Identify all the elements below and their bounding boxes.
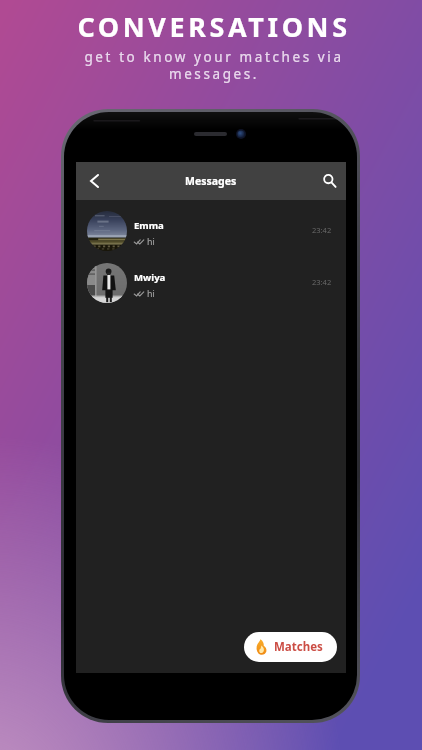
staticText: Messages: [185, 174, 237, 188]
button[interactable]: Back: [81, 168, 107, 194]
staticText: Emma: [134, 219, 164, 232]
button[interactable]: Matches: [244, 632, 337, 662]
staticText: get to know your matches via messages.: [80, 48, 348, 83]
button[interactable]: Mwiya: [76, 257, 346, 309]
button[interactable]: Search: [315, 168, 341, 194]
staticText: hi: [147, 236, 155, 248]
staticText: Matches: [274, 639, 323, 655]
staticText: Mwiya: [134, 271, 166, 284]
staticText: CONVERSATIONS: [77, 8, 351, 45]
staticText: 23:42: [312, 277, 332, 287]
button[interactable]: Emma: [76, 205, 346, 257]
staticText: 23:42: [312, 225, 332, 235]
staticText: hi: [147, 288, 155, 300]
